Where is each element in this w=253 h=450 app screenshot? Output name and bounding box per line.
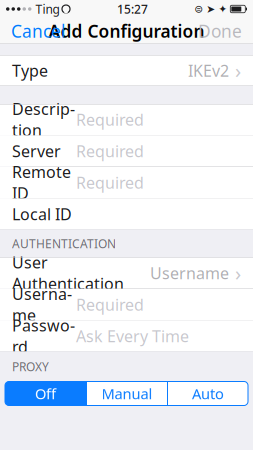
staticText: Done (198, 19, 242, 42)
staticText: Auto (192, 384, 224, 403)
staticText: Required (76, 109, 144, 130)
button[interactable]: Off (5, 381, 86, 405)
staticText: ➤ (206, 3, 215, 15)
staticText: User Authentication (12, 252, 124, 294)
staticText: ✦ (218, 3, 227, 15)
staticText: Ask Every Time (76, 325, 189, 347)
staticText: Username (150, 262, 229, 284)
button[interactable]: Remote ID (0, 167, 253, 198)
staticText: Cancel (11, 19, 65, 42)
staticText: ⊜ (194, 3, 203, 15)
staticText: › (235, 260, 241, 286)
staticText: Local ID (12, 203, 72, 225)
button[interactable]: Type (0, 55, 253, 86)
staticText: AUTHENTICATION (12, 235, 116, 251)
button[interactable]: Server (0, 135, 253, 166)
button[interactable]: Local ID (0, 198, 253, 229)
staticText: Password (12, 315, 75, 357)
staticText: Required (76, 140, 144, 162)
button[interactable]: Username (0, 289, 253, 320)
button[interactable]: User Authentication (0, 257, 253, 288)
staticText: PROXY (12, 358, 49, 374)
staticText: Remote ID (12, 161, 71, 204)
button[interactable]: Password (0, 320, 253, 351)
staticText: IKEv2 (188, 60, 229, 81)
staticText: Username (12, 283, 72, 326)
staticText: Description (12, 98, 75, 141)
staticText: Manual (101, 384, 152, 403)
staticText: Server (12, 140, 61, 162)
button[interactable]: Manual (87, 381, 167, 405)
button[interactable]: Cancel (3, 14, 73, 47)
staticText: Type (12, 60, 48, 81)
staticText: Off (35, 384, 56, 403)
staticText: Ting (35, 1, 59, 17)
staticText: 15:27 (117, 1, 148, 17)
staticText: Required (76, 294, 144, 315)
staticText: › (235, 57, 241, 84)
button[interactable]: Auto (168, 381, 248, 405)
staticText: Add Configuration (48, 19, 204, 42)
button[interactable]: Description (0, 104, 253, 135)
button[interactable]: Done (190, 14, 250, 47)
staticText: Required (76, 172, 144, 193)
